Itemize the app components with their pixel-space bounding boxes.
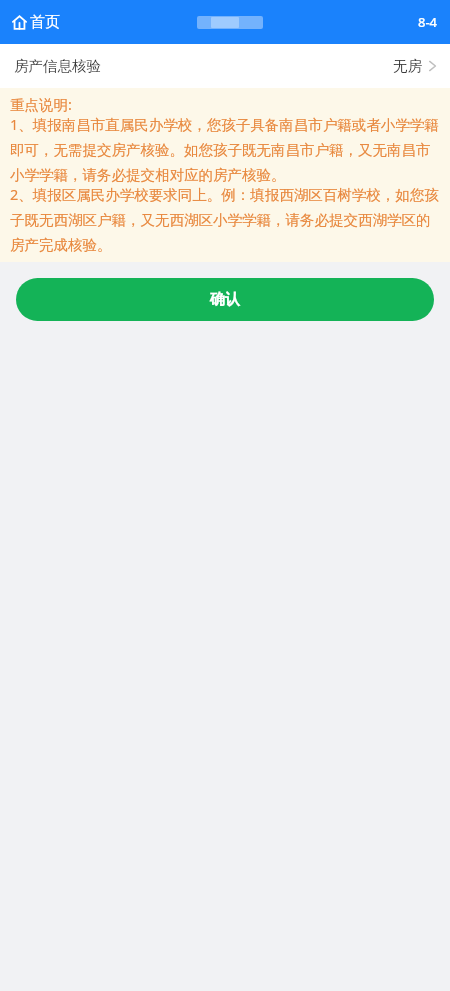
button[interactable]: 确认: [16, 278, 434, 321]
staticText: 确认: [210, 290, 240, 309]
staticText: 房产信息核验: [14, 57, 101, 75]
staticText: 8-4: [418, 13, 438, 31]
button[interactable]: 房产信息核验: [0, 44, 450, 88]
staticText: 2、填报区属民办学校要求同上。例：填报西湖区百树学校，如您孩子既无西湖区户籍，又…: [10, 184, 440, 254]
staticText: 无房: [393, 57, 422, 75]
staticText: 1、填报南昌市直属民办学校，您孩子具备南昌市户籍或者小学学籍即可，无需提交房产核…: [10, 114, 440, 184]
other: Home: [12, 15, 27, 30]
button[interactable]: Home: [10, 9, 62, 36]
staticText: 重点说明:: [10, 94, 72, 114]
staticText: 首页: [30, 13, 60, 32]
